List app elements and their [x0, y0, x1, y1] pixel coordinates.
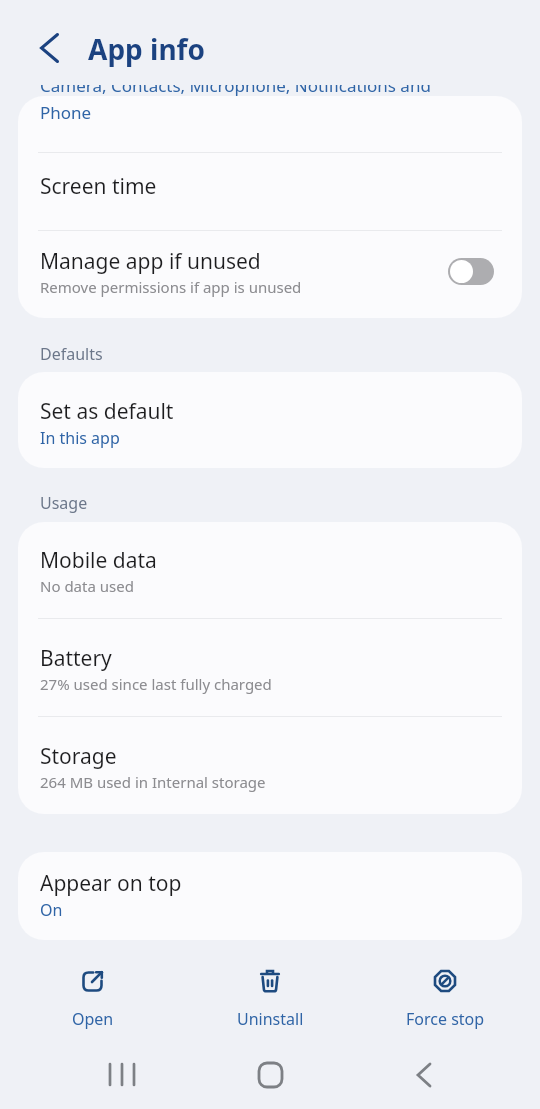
staticText: Mobile data	[40, 546, 157, 575]
staticText: Appear on top	[40, 869, 182, 898]
button[interactable]: Open	[33, 958, 153, 1036]
staticText: Usage	[40, 492, 88, 514]
staticText: Defaults	[40, 343, 103, 365]
button[interactable]	[400, 1056, 448, 1096]
button[interactable]: Set as default	[18, 372, 522, 468]
button[interactable]: Screen time	[18, 153, 522, 230]
staticText: Storage	[40, 742, 117, 771]
staticText: Open	[72, 1008, 114, 1030]
staticText: App info	[88, 30, 205, 68]
button[interactable]: Appear on top	[18, 852, 522, 940]
button[interactable]	[30, 30, 66, 66]
staticText: On	[40, 899, 63, 921]
staticText: In this app	[40, 427, 120, 449]
staticText: 264 MB used in Internal storage	[40, 772, 266, 792]
button[interactable]: Mobile data	[18, 522, 522, 618]
button[interactable]	[246, 1056, 294, 1096]
button[interactable]: Force stop	[385, 958, 505, 1036]
staticText: Phone	[40, 101, 92, 124]
staticText: Force stop	[406, 1008, 485, 1030]
staticText: Screen time	[40, 172, 157, 201]
staticText: Uninstall	[237, 1008, 304, 1030]
staticText: No data used	[40, 576, 134, 596]
staticText: Battery	[40, 644, 112, 673]
button[interactable]	[98, 1056, 146, 1096]
staticText: Set as default	[40, 397, 174, 426]
staticText: Manage app if unused	[40, 247, 261, 276]
button[interactable]: Manage app if unused	[18, 231, 522, 318]
staticText: Camera, Contacts, Microphone, Notificati…	[40, 74, 431, 97]
staticText: Remove permissions if app is unused	[40, 277, 302, 297]
button[interactable]: Uninstall	[210, 958, 330, 1036]
staticText: 27% used since last fully charged	[40, 674, 272, 694]
button[interactable]: Storage	[18, 717, 522, 814]
button[interactable]: Battery	[18, 619, 522, 716]
